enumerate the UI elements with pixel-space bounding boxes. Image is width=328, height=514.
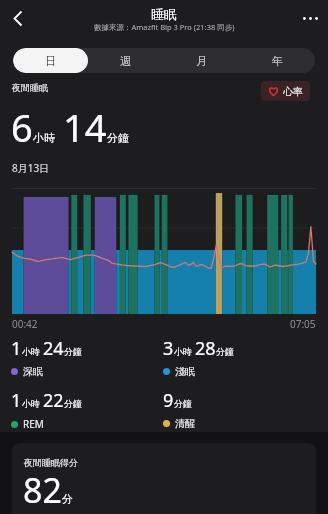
staticText: 日 [45, 54, 56, 68]
staticText: 夜間睡眠得分 [24, 457, 78, 468]
staticText: 分鐘 [216, 346, 234, 357]
staticText: 6 [11, 101, 33, 153]
staticText: 07:05 [290, 317, 316, 331]
button[interactable]: 9 [163, 388, 195, 430]
staticText: 1 [11, 388, 22, 413]
staticText: 1 [11, 336, 22, 361]
button[interactable]: Back [4, 4, 32, 32]
staticText: 9 [163, 388, 174, 413]
staticText: 分 [62, 492, 73, 506]
staticText: 清醒 [175, 417, 195, 430]
staticText: 深眠 [23, 365, 43, 378]
staticText: 週 [120, 54, 131, 68]
button[interactable]: 月 [163, 48, 239, 73]
staticText: REM [23, 417, 44, 431]
staticText: 睡眠 [151, 6, 177, 22]
staticText: 年 [272, 54, 283, 68]
button[interactable]: More options [296, 4, 324, 32]
staticText: 00:42 [12, 317, 38, 331]
staticText: 小時 [174, 346, 192, 357]
staticText: 淺眠 [175, 365, 195, 378]
button[interactable]: 1 [11, 388, 82, 431]
staticText: 分鐘 [64, 346, 82, 357]
staticText: 分鐘 [174, 398, 192, 409]
staticText: 數據來源：Amazfit Bip 3 Pro (21:38 同步) [94, 22, 235, 32]
button[interactable]: 1 [11, 336, 82, 378]
staticText: 分鐘 [64, 398, 82, 409]
staticText: 8月13日 [12, 161, 50, 175]
staticText: 14 [63, 101, 107, 153]
staticText: 分鐘 [107, 131, 129, 145]
staticText: 小時 [22, 346, 40, 357]
button[interactable]: 日 [13, 48, 88, 73]
staticText: 28 [195, 336, 216, 361]
staticText: 心率 [283, 85, 303, 98]
staticText: 小時 [33, 131, 55, 145]
button[interactable]: 3 [163, 336, 234, 378]
staticText: 22 [43, 388, 64, 413]
staticText: 3 [163, 336, 174, 361]
staticText: 24 [43, 336, 64, 361]
staticText: 小時 [22, 398, 40, 409]
button[interactable]: 年 [239, 48, 315, 73]
staticText: 月 [196, 54, 207, 68]
staticText: 82 [23, 467, 62, 513]
button[interactable]: 週 [88, 48, 163, 73]
staticText: 夜間睡眠 [12, 82, 48, 93]
button[interactable]: 心率 [261, 81, 310, 101]
